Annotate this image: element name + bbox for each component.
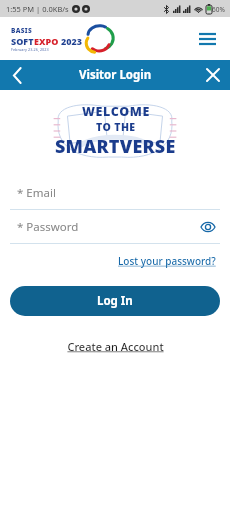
button[interactable]: Log In bbox=[10, 286, 220, 316]
button[interactable]: BASIS Soft Expo 2023 logo bbox=[11, 24, 115, 54]
staticText: SMARTVERSE bbox=[55, 134, 176, 159]
staticText: BASIS bbox=[11, 26, 32, 35]
button[interactable]: Lost your password? bbox=[104, 250, 230, 272]
button[interactable]: * Email bbox=[0, 176, 230, 210]
staticText: * Password bbox=[17, 219, 79, 235]
button[interactable]: Back bbox=[0, 60, 34, 90]
button[interactable]: * Password bbox=[0, 210, 230, 244]
staticText: Visitor Login bbox=[79, 67, 152, 83]
staticText: * Email bbox=[17, 185, 56, 201]
staticText: 60% bbox=[212, 5, 225, 14]
button[interactable]: Close bbox=[196, 60, 230, 90]
staticText: February 23-26, 2023 bbox=[11, 47, 49, 52]
button[interactable]: Menu bbox=[194, 26, 220, 52]
button[interactable]: Show password bbox=[198, 217, 218, 237]
staticText: 2023 bbox=[61, 35, 83, 47]
staticText: SOFT bbox=[11, 35, 34, 47]
staticText: EXPO bbox=[34, 35, 59, 47]
staticText: WELCOME bbox=[82, 103, 150, 120]
staticText: 1:55 PM | 0.0KB/s bbox=[6, 4, 69, 14]
button[interactable]: Create an Account bbox=[55, 334, 176, 359]
staticText: TO THE bbox=[96, 120, 136, 134]
staticText: Log In bbox=[97, 293, 133, 309]
